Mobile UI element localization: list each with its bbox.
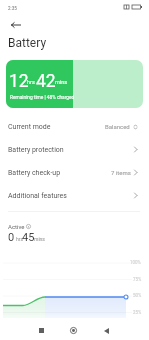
staticText: 7 items (111, 169, 131, 176)
staticText: Active (8, 223, 25, 230)
staticText: 0 (8, 231, 15, 244)
staticText: hrs (27, 79, 35, 85)
staticText: 100% (130, 260, 141, 265)
button[interactable]: Additional features (0, 184, 149, 207)
staticText: Additional features (8, 192, 67, 200)
button[interactable]: Battery check-up (0, 161, 149, 184)
staticText: hrs (16, 236, 24, 242)
button[interactable]: Recents (30, 319, 53, 340)
staticText: 25% (133, 310, 142, 315)
staticText: 2:35 (8, 6, 17, 11)
staticText: Current mode (8, 123, 51, 131)
staticText: 50% (133, 293, 142, 298)
button[interactable]: Current mode (0, 115, 149, 138)
staticText: mins (55, 79, 68, 85)
staticText: Balanced (105, 123, 130, 130)
staticText: 12 (9, 71, 29, 92)
staticText: 45 (22, 231, 35, 244)
button[interactable]: Home (62, 319, 85, 340)
staticText: Battery check-up (8, 169, 61, 177)
staticText: 42 (36, 71, 56, 92)
staticText: Battery (8, 36, 47, 50)
staticText: Remaining time | 48% charged (10, 95, 75, 101)
staticText: mins (34, 236, 45, 242)
button[interactable]: 12 (6, 60, 143, 108)
staticText: 75% (133, 277, 142, 282)
button[interactable]: Battery protection (0, 138, 149, 161)
button[interactable]: Back (7, 16, 25, 34)
button[interactable]: Back (95, 319, 118, 340)
staticText: Battery protection (8, 146, 64, 154)
